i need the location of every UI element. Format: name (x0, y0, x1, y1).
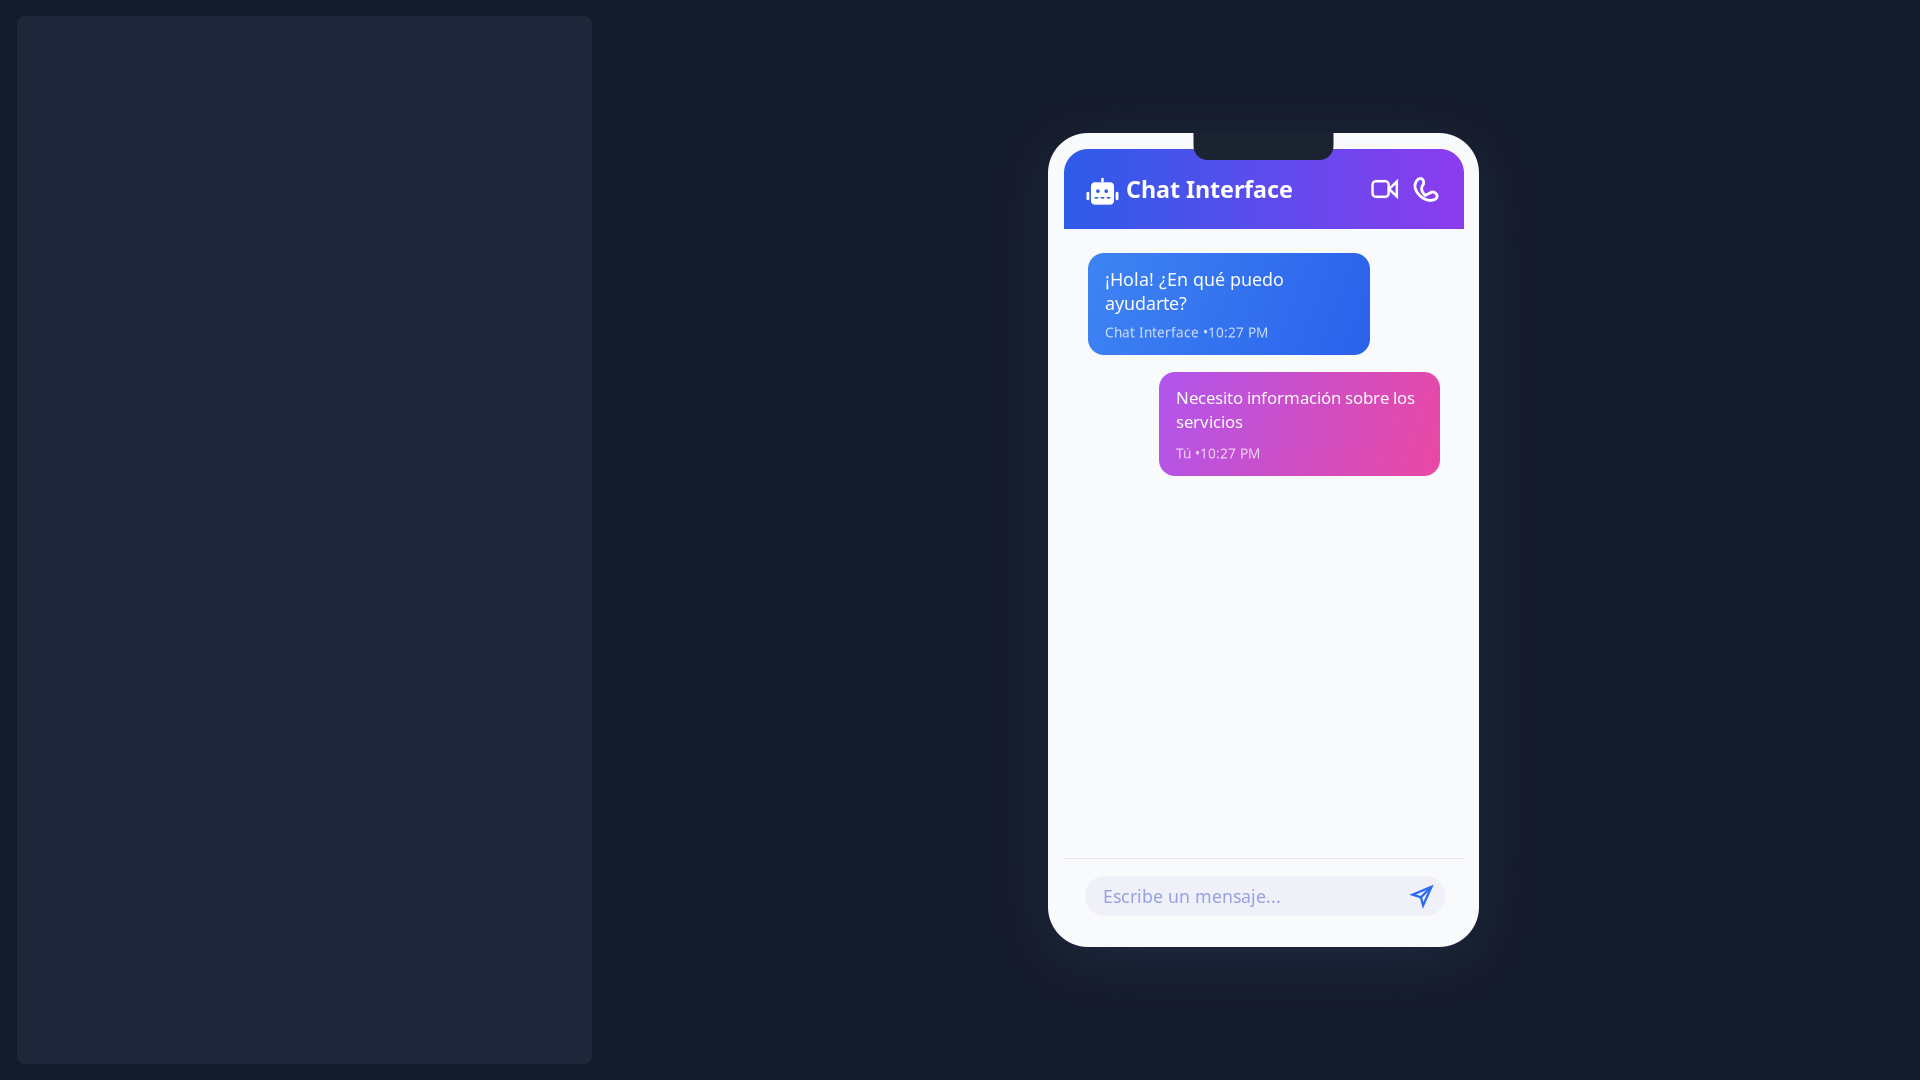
staticText: Chat Interface (1126, 173, 1293, 205)
button[interactable]: Start video call (1365, 169, 1405, 209)
button[interactable]: ¡Hola! ¿En qué puedo (1088, 253, 1370, 355)
staticText: Escribe un mensaje... (1103, 884, 1281, 908)
staticText: Tú •10:27 PM (1176, 444, 1260, 462)
staticText: servicios (1176, 410, 1243, 433)
button[interactable]: Start voice call (1407, 169, 1446, 208)
button[interactable]: Escribe un mensaje... (1085, 876, 1445, 916)
staticText: Chat Interface •10:27 PM (1105, 323, 1268, 341)
staticText: ayudarte? (1105, 291, 1187, 315)
staticText: Necesito información sobre los (1176, 386, 1415, 409)
button[interactable]: Necesito información sobre los (1159, 372, 1440, 476)
button[interactable]: Chat Interface (1082, 173, 1293, 205)
staticText: ¡Hola! ¿En qué puedo (1105, 267, 1284, 291)
